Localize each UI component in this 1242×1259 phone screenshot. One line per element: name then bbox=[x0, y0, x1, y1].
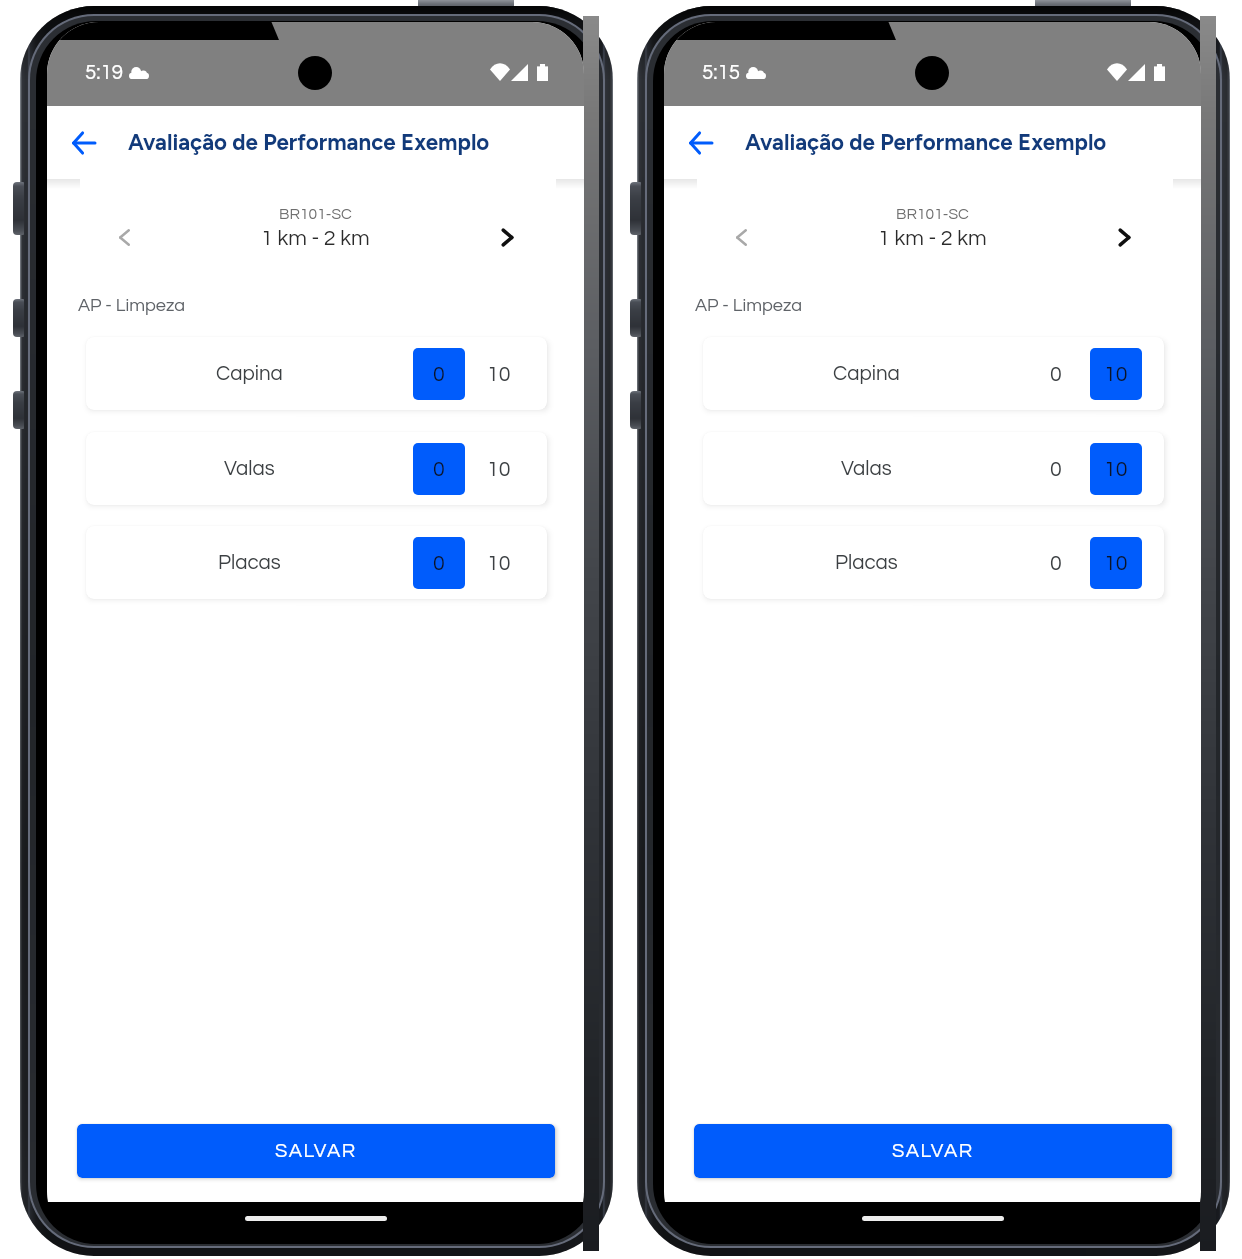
button[interactable]: Trecho anterior bbox=[102, 215, 146, 259]
staticText: Capina bbox=[833, 363, 900, 384]
staticText: 1 km - 2 km bbox=[878, 227, 987, 249]
staticText: 10 bbox=[1104, 363, 1128, 385]
button[interactable]: Valas bbox=[86, 432, 547, 505]
button[interactable]: Capina bbox=[703, 337, 1164, 410]
staticText: 0 bbox=[433, 363, 445, 385]
staticText: AP - Limpeza bbox=[78, 296, 186, 315]
button[interactable]: 0 bbox=[1030, 537, 1082, 589]
button[interactable]: Voltar bbox=[677, 120, 723, 166]
staticText: SALVAR bbox=[275, 1141, 357, 1162]
button[interactable]: 10 bbox=[473, 537, 525, 589]
button[interactable]: 10 bbox=[473, 443, 525, 495]
staticText: 0 bbox=[433, 458, 445, 480]
button[interactable]: Placas bbox=[86, 526, 547, 599]
staticText: 0 bbox=[1050, 458, 1062, 480]
button[interactable]: 10 bbox=[473, 348, 525, 400]
staticText: Valas bbox=[841, 458, 892, 479]
button[interactable]: SALVAR bbox=[77, 1124, 555, 1178]
staticText: 10 bbox=[1104, 458, 1128, 480]
staticText: BR101-SC bbox=[896, 206, 969, 222]
button[interactable]: SALVAR bbox=[694, 1124, 1172, 1178]
staticText: 10 bbox=[487, 458, 511, 480]
button[interactable]: 0 bbox=[1030, 348, 1082, 400]
staticText: Placas bbox=[218, 552, 281, 573]
staticText: 10 bbox=[487, 363, 511, 385]
staticText: SALVAR bbox=[892, 1141, 974, 1162]
button[interactable]: Próximo trecho bbox=[1102, 215, 1146, 259]
button[interactable]: Valas bbox=[703, 432, 1164, 505]
button[interactable]: 0 bbox=[1030, 443, 1082, 495]
staticText: AP - Limpeza bbox=[695, 296, 803, 315]
button[interactable]: 0 bbox=[413, 537, 465, 589]
staticText: 0 bbox=[433, 552, 445, 574]
button[interactable]: Voltar bbox=[60, 120, 106, 166]
button[interactable]: 10 bbox=[1090, 537, 1142, 589]
button[interactable]: 10 bbox=[1090, 348, 1142, 400]
staticText: Avaliação de Performance Exemplo bbox=[745, 129, 1107, 156]
staticText: 5:15 bbox=[702, 62, 740, 83]
button[interactable]: Trecho anterior bbox=[719, 215, 763, 259]
staticText: 1 km - 2 km bbox=[261, 227, 370, 249]
staticText: 0 bbox=[1050, 363, 1062, 385]
button[interactable]: Capina bbox=[86, 337, 547, 410]
staticText: Capina bbox=[216, 363, 283, 384]
staticText: 5:19 bbox=[85, 62, 123, 83]
staticText: 10 bbox=[1104, 552, 1128, 574]
staticText: 0 bbox=[1050, 552, 1062, 574]
staticText: 10 bbox=[487, 552, 511, 574]
button[interactable]: Placas bbox=[703, 526, 1164, 599]
staticText: BR101-SC bbox=[279, 206, 352, 222]
staticText: Valas bbox=[224, 458, 275, 479]
staticText: Avaliação de Performance Exemplo bbox=[128, 129, 490, 156]
button[interactable]: 0 bbox=[413, 348, 465, 400]
button[interactable]: 10 bbox=[1090, 443, 1142, 495]
button[interactable]: 0 bbox=[413, 443, 465, 495]
button[interactable]: Próximo trecho bbox=[485, 215, 529, 259]
staticText: Placas bbox=[835, 552, 898, 573]
